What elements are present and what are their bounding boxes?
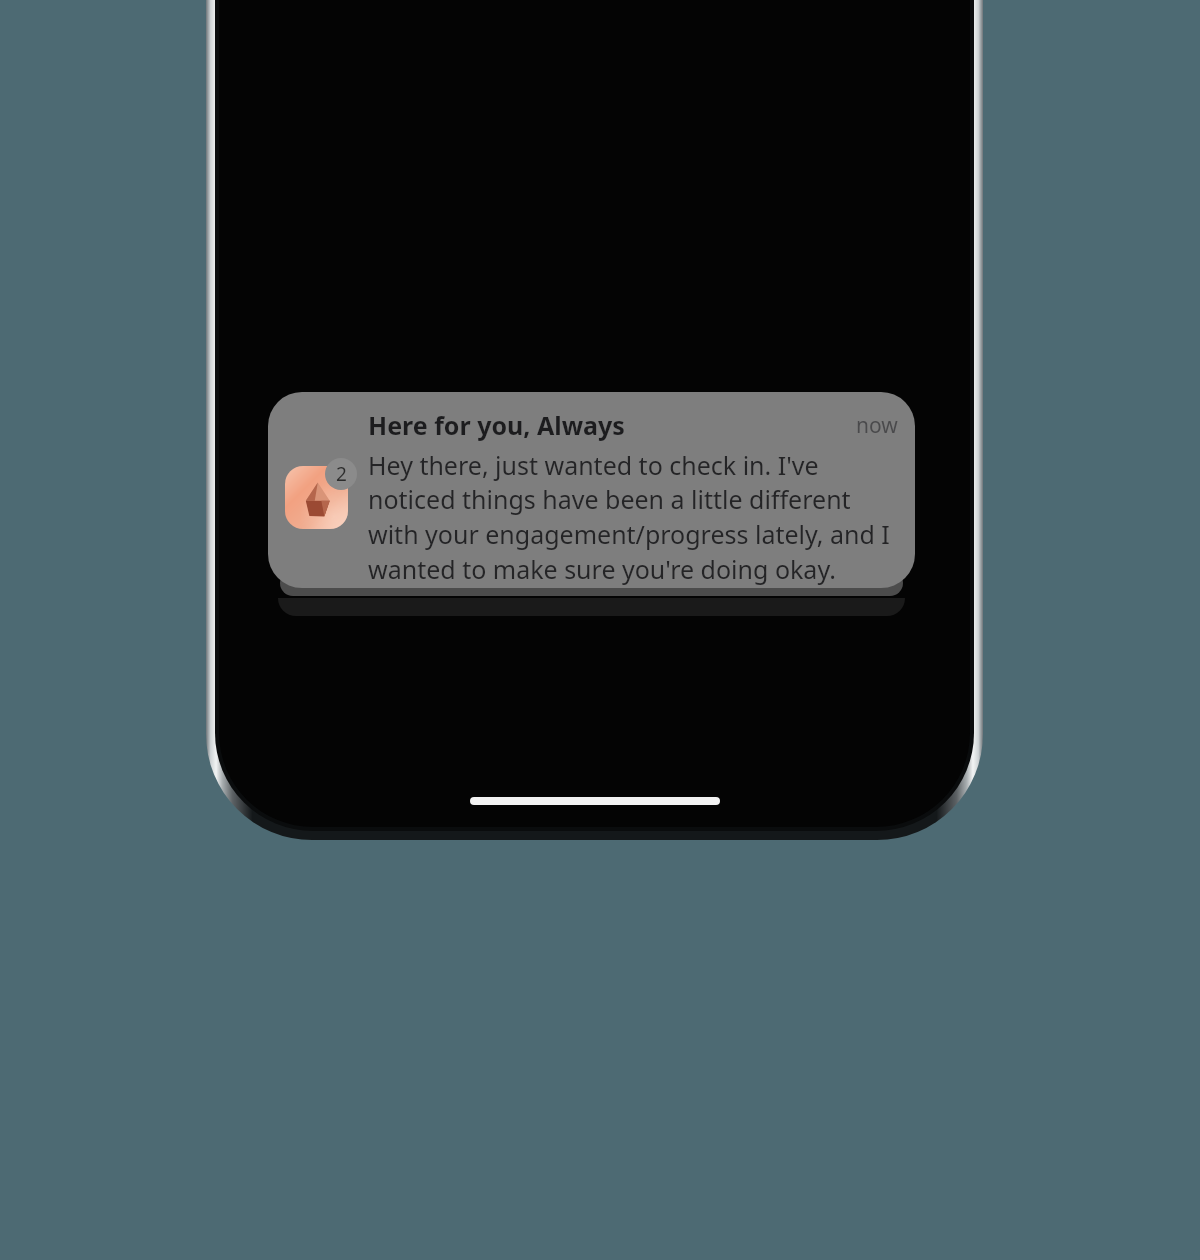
staticText: 2 xyxy=(336,461,347,487)
staticText: now xyxy=(856,411,898,440)
other: App icon xyxy=(285,466,348,529)
button[interactable]: App icon xyxy=(268,392,915,588)
staticText: Here for you, Always xyxy=(368,408,625,442)
staticText: Hey there, just wanted to check in. I've… xyxy=(368,448,898,587)
